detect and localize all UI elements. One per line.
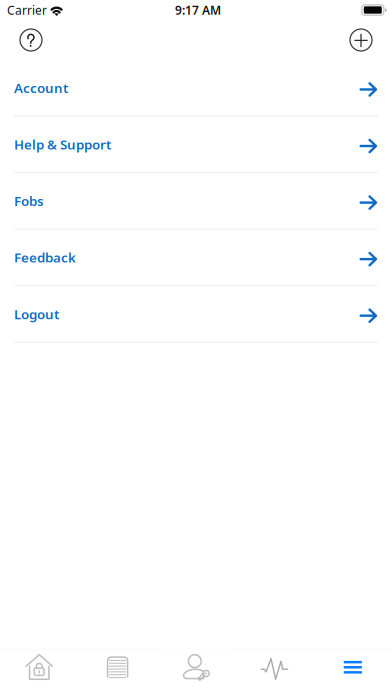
button[interactable]: Doors [78, 649, 157, 696]
button[interactable]: Logout [0, 286, 392, 343]
button[interactable]: Help & Support [0, 116, 392, 173]
staticText: Fobs [14, 192, 44, 210]
staticText: Carrier [7, 2, 47, 18]
staticText: Logout [14, 305, 59, 323]
button[interactable]: Account [0, 60, 392, 116]
button[interactable]: Menu [314, 649, 392, 696]
button[interactable]: Home [0, 649, 78, 696]
button[interactable]: Feedback [0, 230, 392, 286]
button[interactable]: Users [157, 649, 235, 696]
button[interactable]: Help [14, 23, 48, 57]
staticText: Feedback [14, 249, 76, 266]
button[interactable]: Activity [235, 649, 314, 696]
button[interactable]: Add [344, 23, 378, 57]
button[interactable]: Fobs [0, 173, 392, 230]
staticText: Account [14, 79, 68, 97]
staticText: Help & Support [14, 135, 111, 153]
staticText: 9:17 AM [175, 2, 221, 18]
